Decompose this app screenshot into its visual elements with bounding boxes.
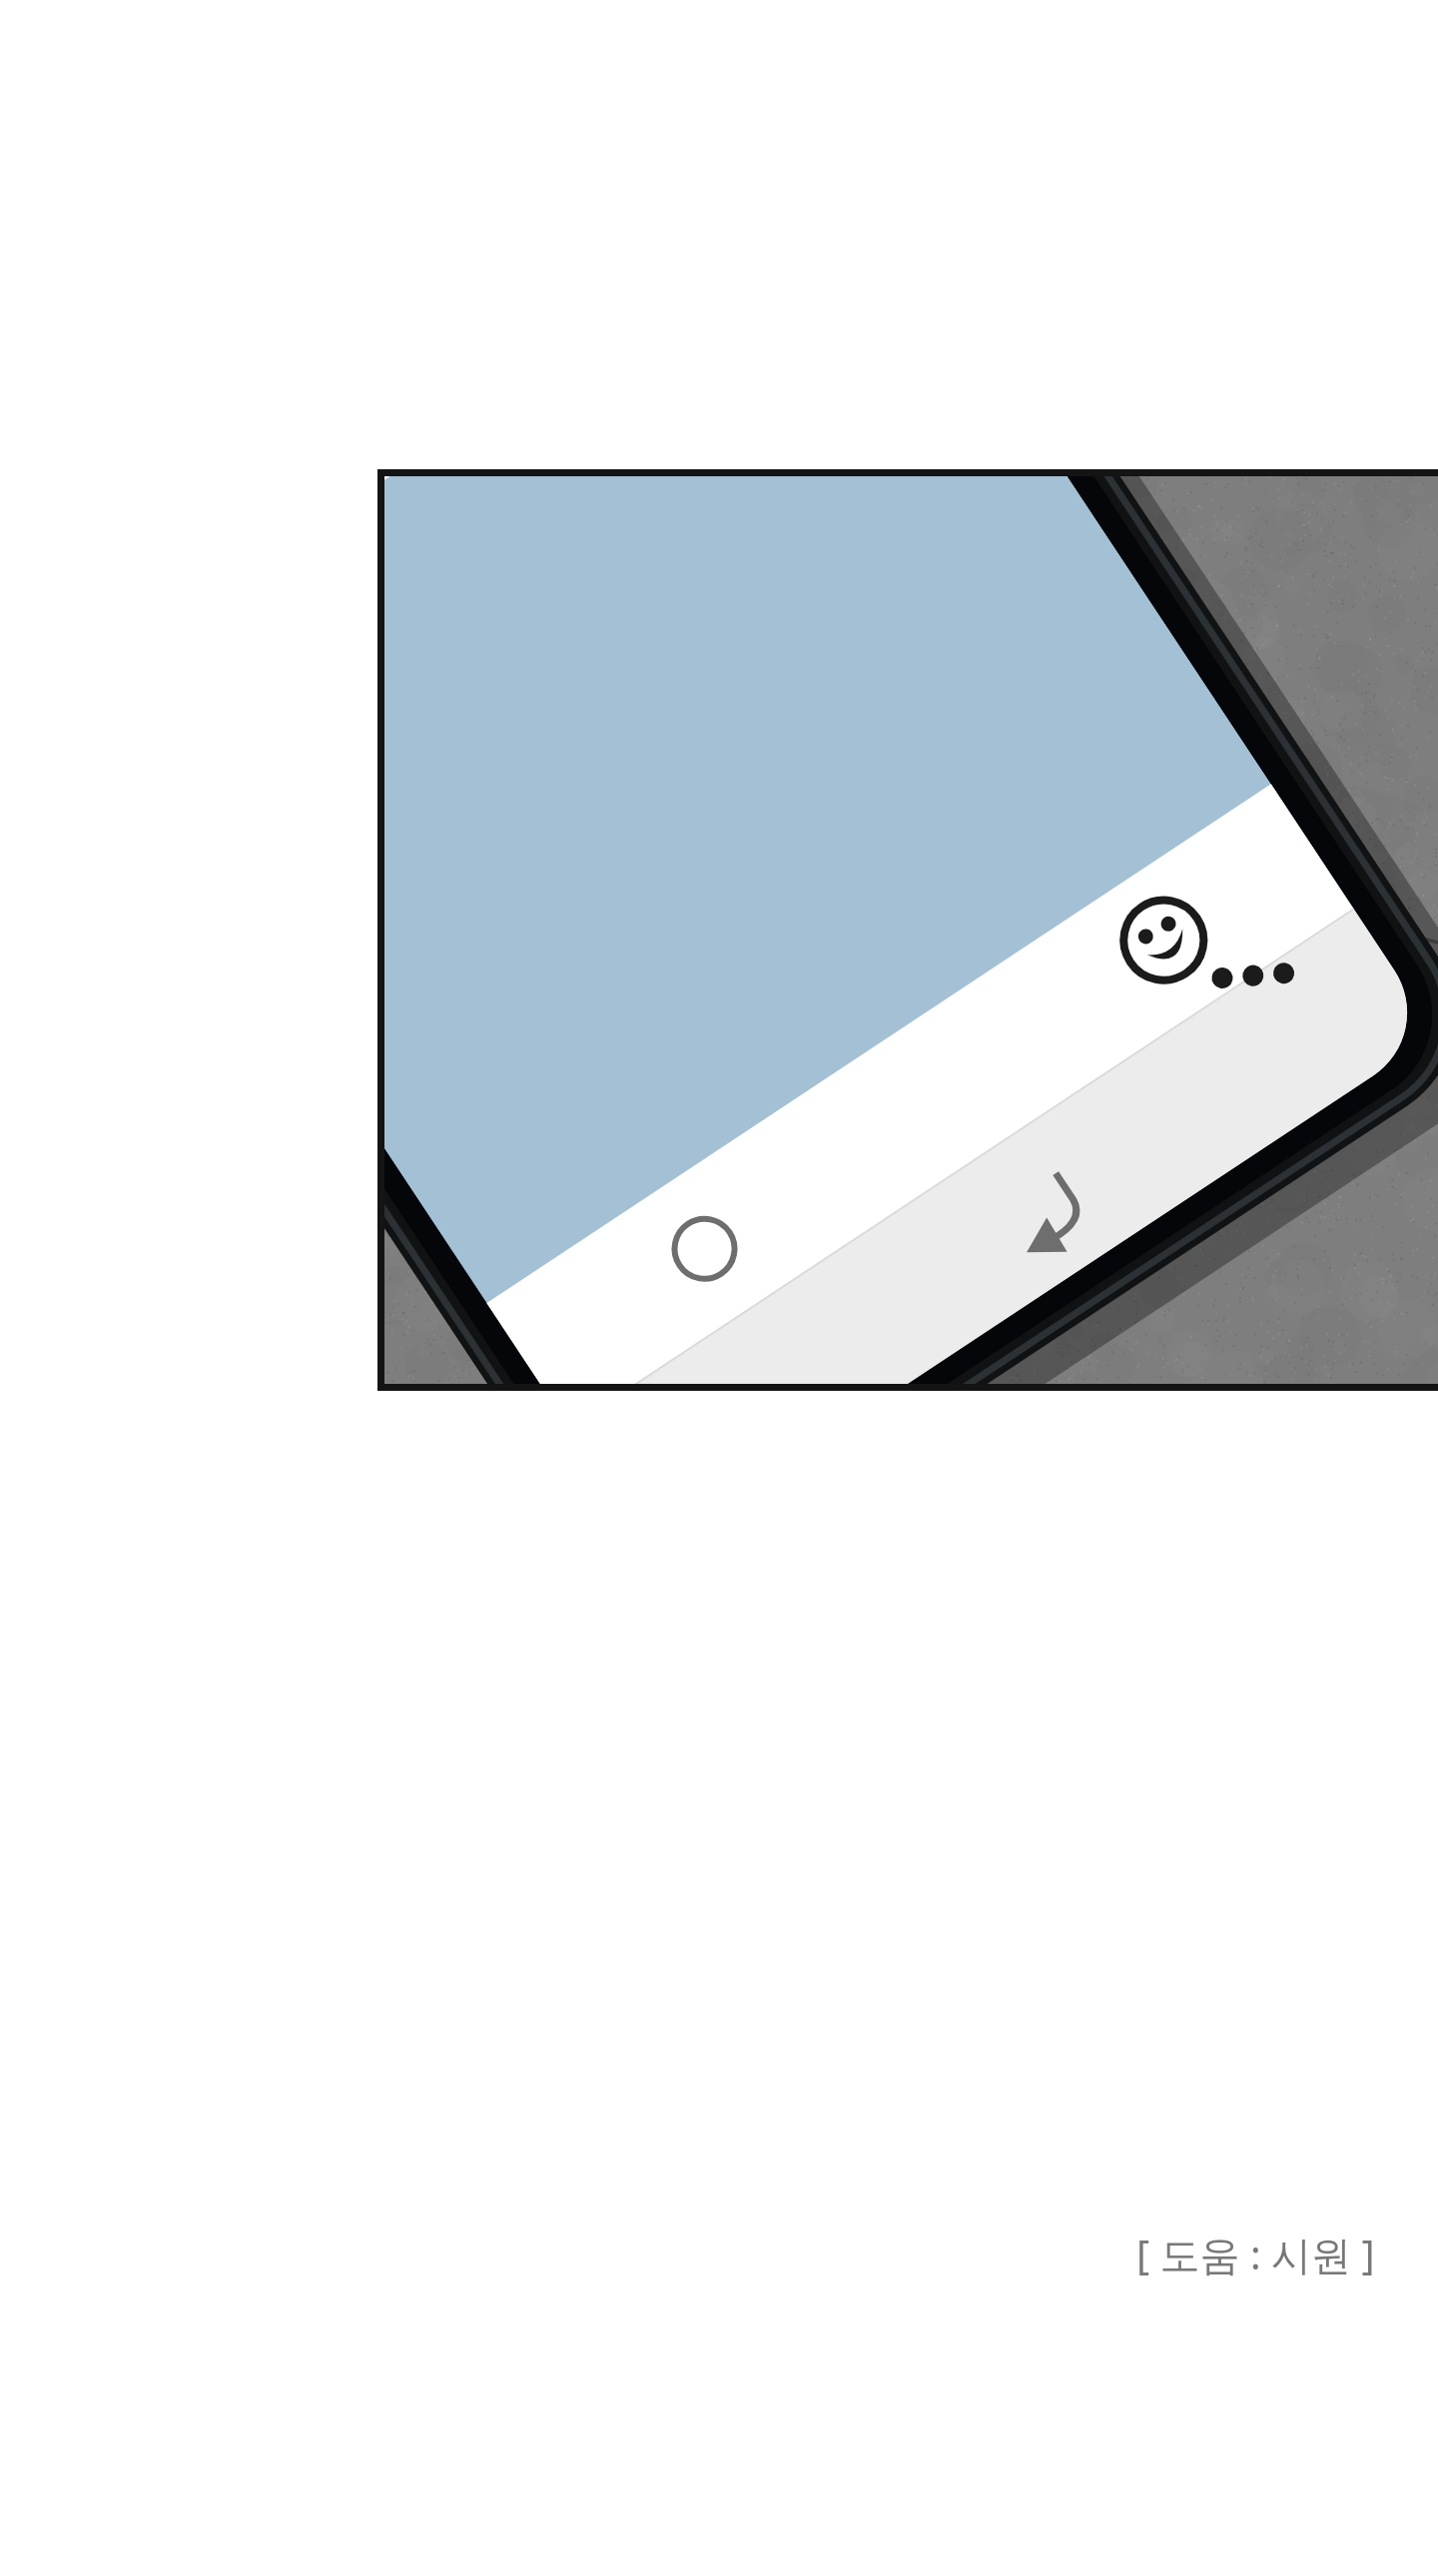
- button[interactable]: Comic panel: a phone lying on a table sh…: [0, 0, 1438, 2576]
